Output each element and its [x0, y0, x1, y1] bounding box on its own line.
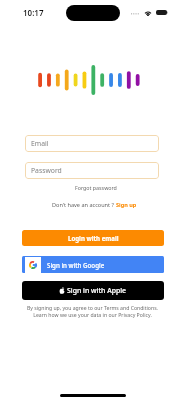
staticText: Sign in with Apple — [67, 286, 127, 295]
button[interactable]: Sign in with Apple — [22, 281, 164, 300]
staticText: 10:17 — [23, 7, 44, 18]
staticText: Email — [31, 139, 49, 148]
staticText: Learn how we use your data in our Privac… — [0, 311, 185, 318]
button[interactable]: Forgot password — [3, 184, 185, 191]
button[interactable]: Sign up — [116, 201, 137, 209]
staticText: By signing up, you agree to our Terms an… — [0, 304, 185, 311]
staticText: Forgot password — [75, 184, 117, 191]
button[interactable]: Sign in with Google — [22, 256, 164, 273]
button[interactable]: Email — [25, 135, 159, 152]
staticText: Login with email — [68, 234, 119, 242]
button[interactable]: Login with email — [22, 230, 164, 246]
staticText: Don't have an account ? — [52, 201, 114, 209]
button[interactable]: Password — [25, 162, 159, 179]
staticText: Password — [31, 166, 62, 175]
staticText: Sign in with Google — [47, 261, 105, 269]
